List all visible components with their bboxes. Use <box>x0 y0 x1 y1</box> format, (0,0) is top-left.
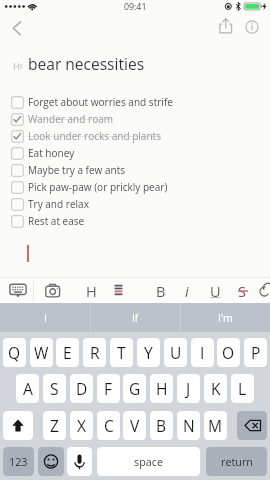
button[interactable]: Info <box>239 13 265 39</box>
staticText: R <box>90 342 100 363</box>
staticText: B <box>156 281 166 301</box>
staticText: 1 <box>19 62 23 71</box>
button[interactable]: Shift <box>3 411 33 440</box>
button[interactable]: Try and relax <box>0 196 270 213</box>
staticText: bear necessities <box>28 53 145 74</box>
button[interactable]: Dictate <box>67 447 92 476</box>
staticText: S <box>50 378 59 399</box>
button[interactable]: B <box>150 411 173 440</box>
button[interactable]: Share <box>212 13 238 39</box>
button[interactable]: L <box>231 374 254 403</box>
button[interactable]: Eat honey <box>0 145 270 162</box>
staticText: J <box>186 378 191 399</box>
staticText: Z <box>50 415 59 436</box>
button[interactable]: Maybe try a few ants <box>0 162 270 179</box>
button[interactable]: M <box>204 411 227 440</box>
staticText: B <box>156 415 167 436</box>
staticText: 09:41 <box>124 1 147 13</box>
staticText: D <box>76 378 88 399</box>
button[interactable]: Forget about worries and strife <box>0 94 270 111</box>
button[interactable]: Y <box>137 338 160 367</box>
button[interactable]: Insert photo <box>38 277 68 304</box>
button[interactable]: T <box>110 338 133 367</box>
staticText: return <box>221 454 253 469</box>
staticText: Try and relax <box>28 197 89 211</box>
button[interactable]: Backspace <box>237 411 267 440</box>
staticText: X <box>77 415 87 436</box>
staticText: Wander and roam <box>28 112 114 126</box>
button[interactable]: O <box>217 338 240 367</box>
button[interactable]: D <box>70 374 93 403</box>
button[interactable]: J <box>177 374 200 403</box>
staticText: U <box>170 342 182 363</box>
staticText: V <box>130 415 140 436</box>
staticText: Q <box>8 342 21 363</box>
staticText: Eat honey <box>28 146 75 160</box>
button[interactable]: S <box>231 277 253 304</box>
button[interactable]: Pick paw-paw (or prickly pear) <box>0 179 270 196</box>
staticText: Pick paw-paw (or prickly pear) <box>28 180 168 194</box>
staticText: Rest at ease <box>28 214 85 228</box>
button[interactable]: H <box>150 374 173 403</box>
staticText: 123 <box>9 454 28 469</box>
button[interactable]: R <box>83 338 106 367</box>
button[interactable]: i <box>176 277 198 304</box>
button[interactable]: U <box>204 277 226 304</box>
staticText: C <box>104 415 114 436</box>
staticText: If <box>132 311 139 325</box>
button[interactable]: space <box>97 447 200 476</box>
button[interactable]: N <box>177 411 200 440</box>
button[interactable]: F <box>97 374 120 403</box>
staticText: G <box>129 378 141 399</box>
button[interactable]: Wander and roam <box>0 111 270 128</box>
staticText: I <box>44 311 47 325</box>
staticText: U <box>210 281 221 301</box>
staticText: K <box>211 378 221 399</box>
button[interactable]: Hide keyboard <box>4 277 32 304</box>
button[interactable]: W <box>30 338 53 367</box>
staticText: P <box>251 342 261 363</box>
staticText: I <box>200 342 205 363</box>
button[interactable]: X <box>70 411 93 440</box>
button[interactable]: V <box>123 411 146 440</box>
button[interactable]: Q <box>3 338 26 367</box>
button[interactable]: Z <box>43 411 66 440</box>
staticText: O <box>222 342 235 363</box>
staticText: I'm <box>218 311 233 325</box>
staticText: N <box>183 415 195 436</box>
staticText: W <box>34 342 49 363</box>
button[interactable]: Rest at ease <box>0 213 270 230</box>
button[interactable]: C <box>97 411 120 440</box>
staticText: H <box>156 378 168 399</box>
staticText: H <box>13 60 20 73</box>
button[interactable]: U <box>164 338 187 367</box>
button[interactable]: return <box>206 447 267 476</box>
button[interactable]: E <box>56 338 79 367</box>
button[interactable]: K <box>204 374 227 403</box>
button[interactable]: I <box>0 303 90 332</box>
button[interactable]: G <box>123 374 146 403</box>
staticText: H <box>86 281 97 301</box>
staticText: L <box>238 378 247 399</box>
staticText: Look under rocks and plants <box>28 129 161 143</box>
button[interactable]: I'm <box>181 303 270 332</box>
button[interactable]: Emoji <box>38 447 64 476</box>
button[interactable]: Attach file <box>258 277 270 304</box>
button[interactable]: Checklist <box>106 277 132 304</box>
button[interactable]: P <box>244 338 267 367</box>
button[interactable]: 123 <box>3 447 34 476</box>
staticText: M <box>208 415 223 436</box>
staticText: i <box>185 281 189 301</box>
staticText: F <box>104 378 113 399</box>
button[interactable]: I <box>191 338 214 367</box>
button[interactable]: B <box>150 277 172 304</box>
button[interactable]: If <box>91 303 180 332</box>
button[interactable]: A <box>16 374 39 403</box>
staticText: space <box>134 454 163 469</box>
staticText: Y <box>144 342 153 363</box>
staticText: Maybe try a few ants <box>28 163 126 177</box>
button[interactable]: H <box>80 277 102 304</box>
button[interactable]: S <box>43 374 66 403</box>
button[interactable]: Back <box>4 16 30 42</box>
button[interactable]: Look under rocks and plants <box>0 128 270 145</box>
